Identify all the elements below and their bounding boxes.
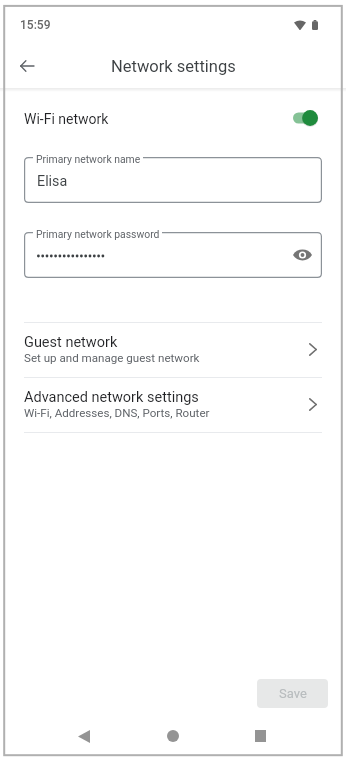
button[interactable]: Back	[11, 50, 43, 82]
staticText: Elisa	[37, 173, 68, 190]
button[interactable]: Wi-Fi network	[0, 98, 346, 139]
staticText: 15:59	[20, 18, 51, 32]
staticText: Wi-Fi network	[24, 111, 109, 127]
button[interactable]: Guest network	[0, 323, 346, 377]
staticText: Primary network name	[36, 153, 141, 165]
button[interactable]: Save	[257, 679, 328, 708]
staticText: Save	[279, 686, 307, 701]
staticText: Set up and manage guest network	[24, 351, 200, 365]
button[interactable]: Advanced network settings	[0, 378, 346, 432]
button[interactable]: Recent apps	[246, 722, 274, 750]
staticText: Primary network password	[36, 228, 160, 240]
button[interactable]: Show password	[288, 241, 316, 269]
button[interactable]: Back	[70, 722, 98, 750]
staticText: Guest network	[24, 334, 118, 351]
staticText: Advanced network settings	[24, 389, 199, 406]
staticText: Network settings	[111, 57, 236, 76]
button[interactable]: Home	[159, 722, 187, 750]
staticText: Wi-Fi, Addresses, DNS, Ports, Router	[24, 406, 210, 420]
